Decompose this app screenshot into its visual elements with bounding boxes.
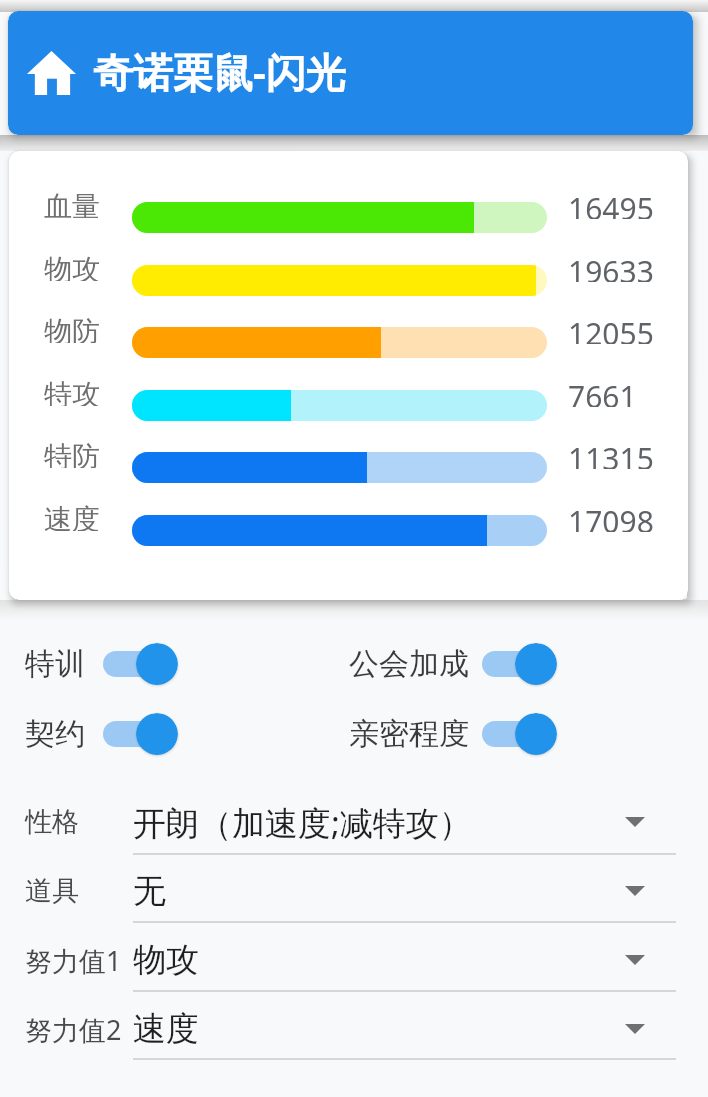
staticText: 无 [133, 870, 166, 912]
staticText: 物攻 [133, 939, 199, 981]
staticText: 物攻 [44, 252, 100, 281]
staticText: 公会加成 [349, 645, 469, 683]
staticText: 特防 [44, 439, 100, 468]
staticText: 物防 [44, 314, 100, 343]
button[interactable] [103, 713, 178, 755]
button[interactable] [482, 713, 557, 755]
staticText: 开朗（加速度;减特攻） [133, 800, 472, 845]
staticText: 努力值1 [25, 942, 122, 979]
staticText: 特攻 [44, 377, 100, 406]
staticText: 12055 [568, 313, 654, 344]
staticText: 亲密程度 [349, 715, 469, 753]
staticText: 17098 [568, 501, 654, 532]
staticText: 血量 [44, 189, 100, 218]
staticText: 19633 [568, 251, 654, 282]
button[interactable] [482, 643, 557, 685]
staticText: 特训 [25, 645, 85, 683]
button[interactable]: 道具 [0, 857, 696, 925]
staticText: 奇诺栗鼠-闪光 [93, 44, 346, 99]
staticText: 契约 [25, 715, 85, 753]
staticText: 努力值2 [25, 1011, 122, 1048]
staticText: 速度 [133, 1008, 199, 1050]
button[interactable]: 努力值2 [0, 995, 696, 1063]
staticText: 7661 [568, 376, 637, 407]
button[interactable]: 努力值1 [0, 926, 696, 994]
staticText: 16495 [568, 188, 654, 219]
button[interactable] [27, 51, 76, 95]
staticText: 性格 [25, 805, 79, 839]
button[interactable] [103, 643, 178, 685]
staticText: 11315 [568, 438, 654, 469]
staticText: 道具 [25, 874, 79, 908]
staticText: 速度 [44, 502, 100, 531]
button[interactable]: 性格 [0, 788, 696, 856]
